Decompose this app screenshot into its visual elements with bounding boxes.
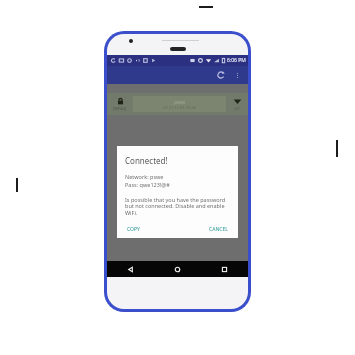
button[interactable]: Back xyxy=(107,261,154,277)
staticText: [WPA2] xyxy=(113,106,127,111)
staticText: -61 xyxy=(234,106,240,111)
staticText: COPY xyxy=(127,226,140,233)
staticText: Is possible that you have the password b… xyxy=(125,196,230,217)
staticText: Connected! xyxy=(125,155,168,166)
button[interactable]: COPY xyxy=(125,224,142,235)
staticText: CANCEL xyxy=(209,226,228,233)
button[interactable]: CANCEL xyxy=(207,224,230,235)
staticText: Network: pswe xyxy=(125,173,164,180)
button[interactable]: Refresh xyxy=(214,68,228,82)
button[interactable]: [WPA2] xyxy=(107,93,248,115)
button[interactable]: Home xyxy=(154,261,201,277)
button[interactable]: Recent apps xyxy=(201,261,248,277)
staticText: -45.21.11.81.90.44 xyxy=(162,105,197,110)
button[interactable]: More options xyxy=(230,68,244,82)
staticText: pswe xyxy=(174,99,185,105)
staticText: 6:06 PM xyxy=(227,57,246,64)
staticText: Pass: qwe123!@# xyxy=(125,181,170,188)
